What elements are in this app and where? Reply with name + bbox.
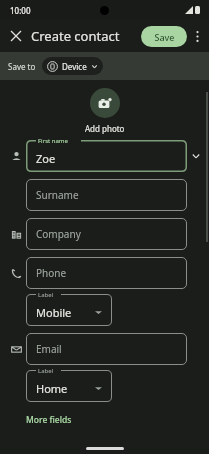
button[interactable]: Label — [26, 370, 112, 402]
button[interactable]: Phone — [26, 257, 187, 289]
staticText: Add photo — [85, 123, 125, 134]
staticText: Company — [36, 227, 81, 241]
button[interactable]: Save — [141, 26, 187, 47]
staticText: Phone — [36, 266, 67, 280]
staticText: Zoe — [36, 151, 56, 166]
staticText: More fields — [26, 414, 72, 426]
staticText: Label — [38, 367, 54, 375]
button[interactable]: Device — [42, 57, 103, 75]
button[interactable]: Company — [26, 218, 187, 250]
staticText: 10:00 — [10, 5, 31, 16]
button[interactable]: Close — [6, 26, 26, 46]
staticText: Device — [62, 61, 87, 72]
staticText: First name — [38, 137, 68, 145]
staticText: Surname — [36, 188, 79, 202]
staticText: Create contact — [31, 27, 120, 45]
button[interactable]: Add photo — [90, 88, 120, 118]
button[interactable]: Expand name fields — [187, 147, 205, 165]
staticText: Mobile — [36, 305, 72, 320]
button[interactable]: Email — [26, 333, 187, 365]
button[interactable]: More options — [188, 27, 206, 45]
button[interactable]: More fields — [20, 411, 78, 429]
button[interactable]: Label — [26, 294, 112, 326]
staticText: Label — [38, 291, 54, 299]
staticText: Save — [154, 31, 175, 43]
staticText: Email — [36, 342, 62, 356]
button[interactable]: First name — [26, 140, 187, 172]
button[interactable]: Surname — [26, 179, 187, 211]
staticText: Home — [36, 381, 68, 396]
staticText: Save to — [8, 61, 36, 72]
